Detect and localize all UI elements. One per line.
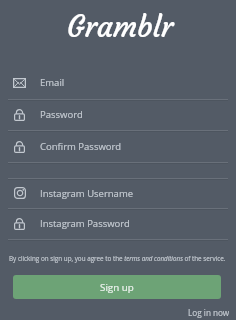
other: Password	[14, 108, 25, 121]
button[interactable]: Log in now	[188, 307, 230, 318]
staticText: Sign up	[100, 281, 134, 294]
staticText: By clicking on sign up, you agree to the…	[9, 254, 227, 263]
button[interactable]: Email	[0, 68, 236, 99]
other: Confirm password	[14, 140, 25, 153]
other: Email	[13, 78, 26, 88]
button[interactable]: Confirm password	[0, 132, 236, 162]
button[interactable]: Instagram username	[0, 180, 236, 208]
staticText: Log in now	[188, 307, 230, 318]
button[interactable]: Sign up	[13, 275, 221, 299]
other: Instagram username	[14, 187, 26, 199]
other: Instagram password	[14, 217, 25, 230]
button[interactable]: Instagram password	[0, 210, 236, 239]
button[interactable]: Password	[0, 101, 236, 130]
staticText: Instagram Username	[40, 187, 134, 200]
staticText: Gramblr	[67, 8, 174, 45]
staticText: Password	[40, 108, 83, 121]
staticText: Email	[40, 76, 65, 89]
staticText: Instagram Password	[40, 217, 130, 230]
staticText: Confirm Password	[40, 140, 122, 153]
